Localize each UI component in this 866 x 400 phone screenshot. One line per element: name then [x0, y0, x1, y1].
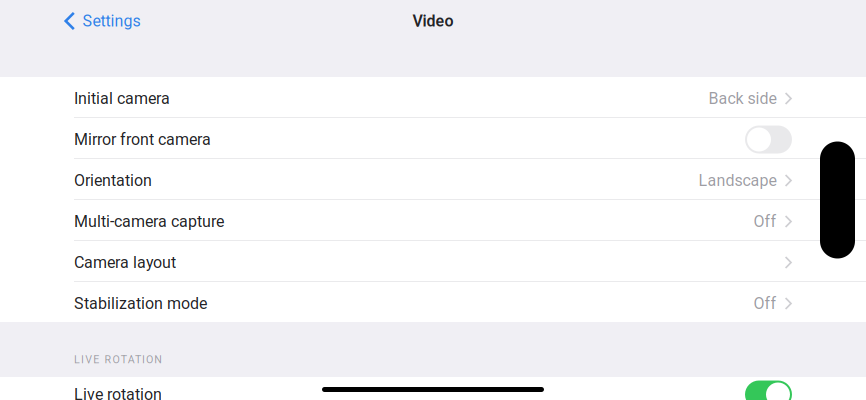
button[interactable]: Live rotation [0, 377, 866, 400]
staticText: Orientation [74, 171, 152, 190]
staticText: Video [412, 12, 453, 30]
staticText: Off [754, 212, 777, 231]
button[interactable]: Multi-camera capture [0, 200, 866, 240]
staticText: Live rotation [74, 385, 162, 400]
staticText: Settings [82, 12, 140, 30]
staticText: Off [754, 294, 777, 313]
button[interactable]: Stabilization mode [0, 282, 866, 322]
button[interactable]: Mirror front camera [0, 118, 866, 158]
staticText: Stabilization mode [74, 294, 207, 313]
button[interactable]: Orientation [0, 159, 866, 199]
button[interactable]: Back to Settings [0, 0, 154, 42]
staticText: Camera layout [74, 253, 176, 272]
staticText: Back side [709, 89, 777, 108]
button[interactable]: Camera layout [0, 241, 866, 281]
staticText: Multi-camera capture [74, 212, 224, 231]
button[interactable]: Initial camera [0, 77, 866, 117]
staticText: Mirror front camera [74, 130, 211, 149]
staticText: Landscape [699, 171, 777, 190]
staticText: Initial camera [74, 89, 170, 108]
staticText: LIVE ROTATION [74, 353, 162, 366]
